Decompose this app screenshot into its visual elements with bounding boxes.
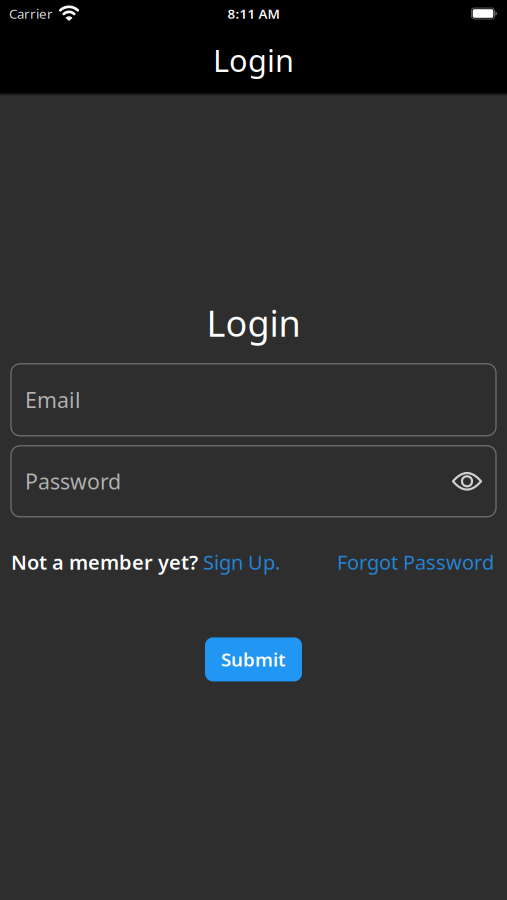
staticText: Login [206, 299, 300, 347]
staticText: Submit [221, 647, 286, 672]
button[interactable]: Submit [205, 637, 302, 681]
staticText: Not a member yet? [11, 549, 203, 575]
button[interactable]: Sign Up. [203, 549, 280, 575]
button[interactable]: Show password [452, 470, 482, 492]
staticText: Forgot Password [337, 549, 494, 575]
button[interactable]: Forgot Password [337, 549, 494, 575]
staticText: Password [25, 467, 121, 495]
staticText: Login [213, 40, 294, 80]
staticText: Email [25, 386, 81, 414]
staticText: Carrier [9, 5, 53, 22]
staticText: Sign Up. [203, 549, 280, 575]
button[interactable]: Email [11, 364, 496, 436]
staticText: 8:11 AM [227, 5, 279, 22]
button[interactable]: Password [11, 446, 496, 517]
